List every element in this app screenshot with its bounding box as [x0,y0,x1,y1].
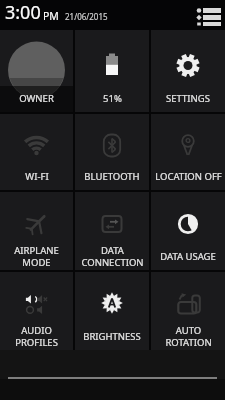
button[interactable]: 51% [75,30,149,112]
staticText: 21/06/2015 [65,11,108,22]
staticText: DATA USAGE [160,250,216,263]
button[interactable]: DATA USAGE [151,192,225,270]
staticText: LOCATION OFF [155,170,222,183]
staticText: OWNER [19,92,54,105]
staticText: AUTO ROTATION [165,324,212,348]
staticText: 51% [103,92,122,105]
button[interactable]: BRIGHTNESS [75,272,149,350]
button[interactable]: WI-FI [0,114,73,190]
staticText: 3:00 [5,0,41,25]
staticText: WI-FI [25,170,49,183]
button[interactable]: LOCATION OFF [151,114,225,190]
staticText: PM [43,9,59,23]
button[interactable] [196,8,221,26]
button[interactable]: SETTINGS [151,30,225,112]
button[interactable]: OWNER [0,30,73,112]
staticText: BLUETOOTH [84,170,140,183]
button[interactable]: BLUETOOTH [75,114,149,190]
staticText: BRIGHTNESS [83,330,141,343]
staticText: DATA CONNECTION [81,244,144,268]
staticText: AIRPLANE MODE [14,244,59,268]
staticText: SETTINGS [166,92,210,105]
button[interactable]: AIRPLANE MODE [0,192,73,270]
button[interactable]: AUTO ROTATION [151,272,225,350]
staticText: AUDIO PROFILES [15,324,58,348]
button[interactable]: DATA CONNECTION [75,192,149,270]
button[interactable]: AUDIO PROFILES [0,272,73,350]
